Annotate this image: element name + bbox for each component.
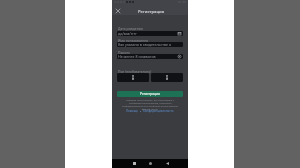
button[interactable]: Мужской bbox=[117, 73, 149, 82]
button[interactable]: Помощь bbox=[126, 109, 138, 113]
button[interactable]: Назад bbox=[164, 160, 170, 166]
other: Выбрать дату bbox=[178, 32, 181, 35]
button[interactable]: Недавние приложения bbox=[131, 160, 137, 166]
staticText: Регистрация bbox=[140, 92, 160, 96]
staticText: Не менее 8 символов bbox=[118, 54, 156, 59]
staticText: дд/мм/гггг bbox=[118, 31, 137, 36]
staticText: Нажимая «Регистрация», вы соглашаетесь с… bbox=[120, 99, 180, 111]
button[interactable]: Главный экран bbox=[147, 160, 153, 166]
button[interactable]: дд/мм/гггг bbox=[117, 31, 183, 36]
button[interactable]: Закрыть bbox=[114, 7, 122, 15]
staticText: Дата рождения bbox=[118, 26, 143, 30]
other: Показать пароль bbox=[178, 55, 181, 58]
button[interactable]: Не менее 8 символов bbox=[117, 54, 183, 59]
staticText: Пол (необязательно) bbox=[118, 69, 152, 73]
staticText: Регистрация bbox=[138, 9, 165, 15]
button[interactable]: Регистрация bbox=[117, 91, 183, 97]
button[interactable]: Как указано в свидетельстве о рождении bbox=[117, 42, 183, 47]
staticText: Как указано в свидетельстве о рождении bbox=[118, 42, 183, 47]
staticText: Пароль bbox=[118, 50, 130, 54]
staticText: Имя пользователя bbox=[118, 38, 148, 42]
button[interactable]: Женский bbox=[151, 73, 183, 82]
button[interactable]: Конфиденциальность bbox=[143, 109, 174, 113]
